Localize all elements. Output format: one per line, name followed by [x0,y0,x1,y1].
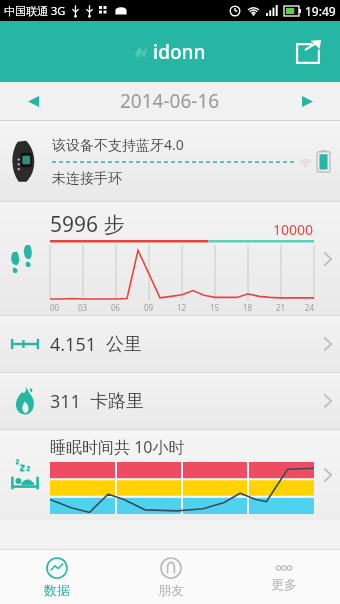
button[interactable]: Share [286,30,330,74]
staticText: 12 [165,302,198,313]
staticText: 311 [50,389,81,414]
staticText: 睡眠时间共 10小时 [50,436,185,458]
button[interactable]: 该设备不支持蓝牙4.0 [0,121,340,201]
staticText: 该设备不支持蓝牙4.0 [52,135,184,154]
button[interactable]: 5996 步 [0,202,340,315]
button[interactable]: Previous day [16,84,50,118]
staticText: 09 [132,302,165,313]
staticText: 06 [99,302,132,313]
staticText: 5996 步 [50,210,125,239]
staticText: 03 [66,302,99,313]
staticText: 24 [297,302,314,313]
button[interactable]: 4.151 [0,316,340,372]
button[interactable]: Next day [290,84,324,118]
staticText: 10000 [273,220,314,239]
staticText: 更多 [271,576,297,592]
staticText: 中国联通 [4,4,48,18]
staticText: 数据 [44,582,70,598]
button[interactable]: 朋友 [114,550,227,604]
staticText: 15 [198,302,231,313]
staticText: 21 [264,302,297,313]
staticText: 4.151 [50,332,97,357]
staticText: idonn [153,39,206,65]
button[interactable]: 数据 [0,550,114,604]
button[interactable]: 睡眠时间共 10小时 [0,430,340,520]
staticText: 朋友 [158,582,184,598]
staticText: 18 [231,302,264,313]
staticText: 公里 [106,333,142,356]
staticText: 未连接手环 [52,170,122,188]
button[interactable]: 311 [0,373,340,429]
staticText: 2014-06-16 [120,88,220,114]
staticText: 19:49 [305,3,336,19]
staticText: 卡路里 [90,390,144,413]
button[interactable]: 更多 [227,550,340,604]
staticText: 3G [51,3,66,18]
staticText: 00 [50,302,66,313]
